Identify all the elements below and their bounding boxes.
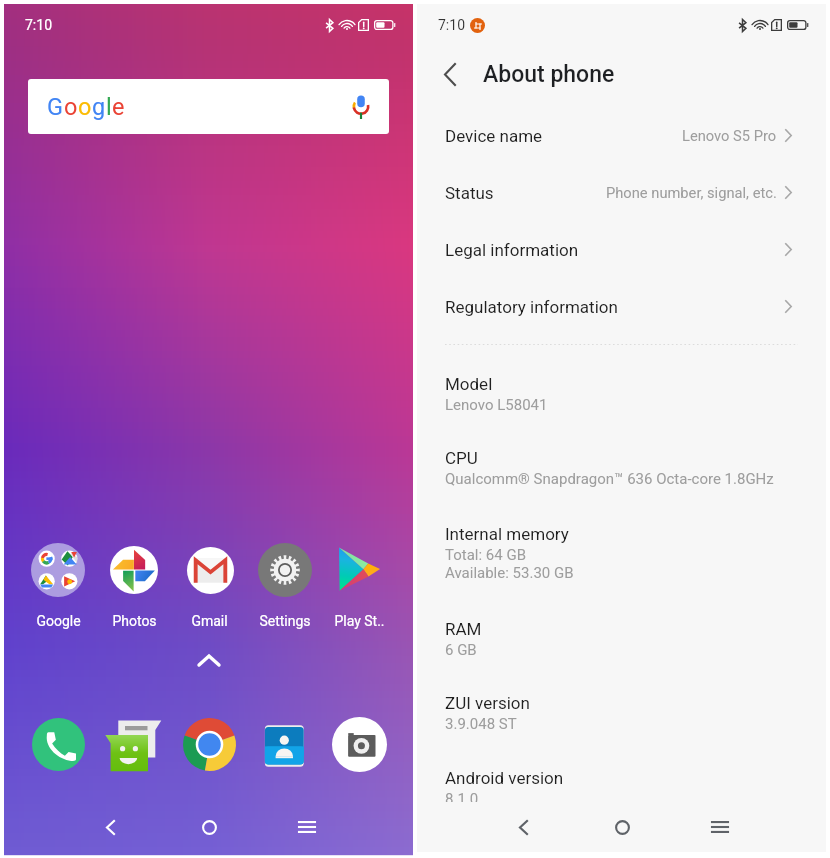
button[interactable]: Back [474, 805, 573, 849]
staticText: G [47, 93, 64, 121]
staticText: Gmail [191, 613, 228, 629]
staticText: 6 GB [445, 641, 477, 659]
button[interactable]: Chrome [172, 716, 247, 772]
staticText: 7:10 [438, 17, 465, 33]
staticText: l [106, 93, 112, 121]
staticText: Play St.. [334, 613, 385, 629]
staticText: 7:10 [25, 17, 52, 33]
button[interactable]: Recents [258, 805, 356, 849]
staticText: ZUI version [445, 693, 530, 713]
button[interactable]: Google [20, 542, 96, 629]
other: Open app drawer [197, 654, 221, 667]
staticText: CPU [445, 448, 478, 468]
button[interactable]: Camera [322, 716, 397, 772]
staticText: Model [445, 374, 493, 394]
button[interactable]: Status [417, 164, 826, 221]
staticText: RAM [445, 619, 482, 639]
button[interactable]: Photos [96, 542, 172, 629]
staticText: o [78, 93, 92, 121]
button[interactable]: Phone [20, 716, 96, 772]
staticText: Google [36, 613, 81, 629]
staticText: o [64, 93, 78, 121]
button[interactable]: Regulatory information [417, 278, 826, 335]
staticText: Qualcomm® Snapdragon™ 636 Octa-core 1.8G… [445, 470, 774, 488]
staticText: Device name [445, 126, 543, 146]
button[interactable]: Home [573, 805, 671, 849]
button[interactable]: Contacts [247, 716, 322, 772]
staticText: 3.9.048 ST [445, 715, 517, 733]
button[interactable]: Play St.. [322, 542, 397, 629]
button[interactable]: Settings [247, 542, 322, 629]
button[interactable]: Gmail [172, 542, 247, 629]
staticText: Settings [259, 613, 311, 629]
button[interactable]: Back [417, 46, 483, 102]
staticText: g [92, 93, 106, 121]
staticText: Phone number, signal, etc. [606, 184, 777, 201]
staticText: Status [445, 183, 494, 203]
staticText: Regulatory information [445, 297, 618, 317]
staticText: Internal memory [445, 524, 569, 544]
staticText: Total: 64 GB [445, 546, 526, 564]
button[interactable]: Device name [417, 107, 826, 164]
staticText: e [112, 93, 125, 121]
button[interactable]: Legal information [417, 221, 826, 278]
other: Voice search [352, 94, 370, 120]
staticText: Photos [112, 613, 157, 629]
button[interactable]: Home [160, 805, 258, 849]
button[interactable]: Back [61, 805, 160, 849]
button[interactable]: G [28, 79, 389, 134]
staticText: Lenovo S5 Pro [682, 127, 777, 144]
button[interactable]: Recents [671, 805, 769, 849]
staticText: Legal information [445, 240, 579, 260]
staticText: About phone [483, 61, 615, 88]
staticText: Android version [445, 768, 564, 788]
staticText: Available: 53.30 GB [445, 564, 574, 582]
staticText: 8.1.0 [445, 790, 479, 808]
staticText: Lenovo L58041 [445, 396, 548, 414]
button[interactable]: Messaging [96, 716, 172, 772]
